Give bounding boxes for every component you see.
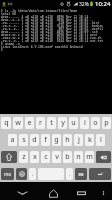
button[interactable]: Home xyxy=(43,186,64,200)
staticText: -rw------- 1 u0_a218 u0_a218 220 Nov 12 … xyxy=(1,21,100,24)
button[interactable]: l xyxy=(96,134,105,146)
button[interactable]: w xyxy=(13,117,23,129)
staticText: !?12 xyxy=(4,172,11,177)
staticText: EN xyxy=(78,172,84,177)
button[interactable]: Recent apps xyxy=(71,186,91,200)
staticText: a xyxy=(10,135,15,145)
staticText: -rw-r--r-- 1 u0_a218 u0_a218 807 Nov 12 … xyxy=(1,27,104,30)
button[interactable]: o xyxy=(91,117,100,129)
staticText: -rwxr-xr-x 1 u0_a218 u0_a218 8192 Nov 12… xyxy=(1,36,102,39)
button[interactable]: c xyxy=(41,151,50,163)
staticText: v xyxy=(55,152,59,162)
staticText: j xyxy=(78,135,80,145)
button[interactable] xyxy=(96,151,111,163)
button[interactable]: q xyxy=(1,117,11,129)
button[interactable]: k xyxy=(85,134,94,146)
button[interactable]: !?12 xyxy=(1,168,14,180)
staticText: t xyxy=(50,118,53,128)
staticText: drwx------ 4 u0_a218 u0_a218 4096 Nov 12… xyxy=(1,15,92,18)
staticText: $ ls -la /data/data/com.termux/files/hom… xyxy=(1,9,78,12)
button[interactable]: g xyxy=(52,134,61,146)
staticText: . xyxy=(69,171,71,178)
staticText: e xyxy=(27,118,32,128)
staticText: z xyxy=(22,152,26,162)
staticText: n xyxy=(76,152,81,162)
staticText: p xyxy=(104,118,109,128)
button[interactable]: x xyxy=(30,151,39,163)
button[interactable]: , xyxy=(29,168,36,180)
staticText: $ uname -a xyxy=(1,42,20,45)
button[interactable]: i xyxy=(80,117,89,129)
button[interactable]: y xyxy=(58,117,67,129)
button[interactable]: h xyxy=(63,134,72,146)
staticText: m xyxy=(86,152,93,162)
staticText: total 68 xyxy=(1,12,16,15)
button[interactable]: j xyxy=(74,134,83,146)
staticText: c xyxy=(44,152,48,162)
button[interactable]: Hide keyboard xyxy=(12,186,32,200)
staticText: 32% xyxy=(79,1,89,8)
staticText: y xyxy=(61,118,65,128)
staticText: $ xyxy=(1,48,5,51)
staticText: , xyxy=(32,171,34,178)
staticText: f xyxy=(44,135,47,145)
staticText: drwxr-xr-x 3 u0_a218 u0_a218 4096 Nov 12… xyxy=(1,33,98,36)
button[interactable]: EN xyxy=(75,168,87,180)
button[interactable]: s xyxy=(19,134,28,146)
staticText: l xyxy=(100,135,102,145)
button[interactable]: More options xyxy=(95,186,111,200)
button[interactable]: r xyxy=(36,117,45,129)
button[interactable] xyxy=(16,168,27,180)
staticText: -rw-r--r-- 1 u0_a218 u0_a218 3526 Nov 12… xyxy=(1,24,104,27)
staticText: r xyxy=(39,118,42,128)
staticText: -rw-r--r-- 1 u0_a218 u0_a218 1024 Nov 12… xyxy=(1,39,104,42)
button[interactable]: p xyxy=(102,117,111,129)
staticText: x xyxy=(33,152,37,162)
button[interactable]: z xyxy=(19,151,28,163)
staticText: u xyxy=(71,118,76,128)
staticText: d xyxy=(32,135,37,145)
button[interactable]: d xyxy=(30,134,39,146)
button[interactable]: e xyxy=(25,117,34,129)
staticText: b xyxy=(65,152,70,162)
staticText: h xyxy=(65,135,70,145)
staticText: g xyxy=(54,135,59,145)
staticText: drwx------ 2 u0_a218 u0_a218 4096 Nov 12… xyxy=(1,30,98,33)
staticText: s xyxy=(22,135,26,145)
button[interactable]: . xyxy=(66,168,73,180)
staticText: drwx--x--x 5 u0_a218 u0_a218 4096 Nov 12… xyxy=(1,18,94,21)
staticText: k xyxy=(88,135,92,145)
button[interactable]: f xyxy=(41,134,50,146)
button[interactable]: u xyxy=(69,117,78,129)
staticText: q xyxy=(4,118,9,128)
staticText: w xyxy=(15,118,21,128)
staticText: 10:24 xyxy=(95,0,111,8)
staticText: i xyxy=(84,118,86,128)
button[interactable]: t xyxy=(47,117,56,129)
button[interactable]: m xyxy=(85,151,94,163)
button[interactable]: b xyxy=(63,151,72,163)
staticText: o xyxy=(93,118,98,128)
button[interactable] xyxy=(89,168,111,180)
button[interactable] xyxy=(1,151,17,163)
staticText: Linux localhost 4.9.186-perf aarch64 And… xyxy=(1,45,83,48)
button[interactable]: n xyxy=(74,151,83,163)
button[interactable]: a xyxy=(8,134,17,146)
button[interactable]: v xyxy=(52,151,61,163)
